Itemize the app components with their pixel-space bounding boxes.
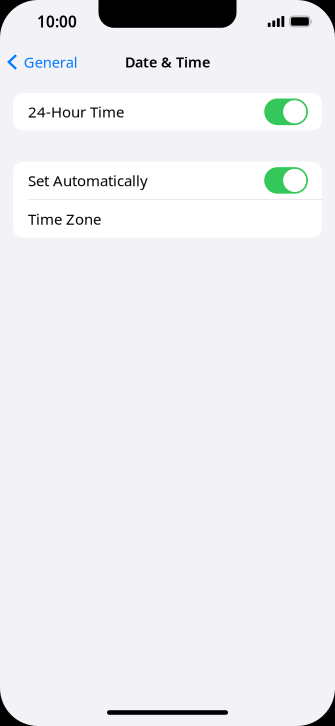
- button[interactable]: Set Automatically: [13, 162, 322, 199]
- staticText: Set Automatically: [28, 170, 148, 190]
- button[interactable]: Time Zone: [13, 200, 322, 238]
- staticText: General: [24, 52, 78, 72]
- button[interactable]: 24-Hour Time: [13, 93, 322, 131]
- staticText: Time Zone: [28, 209, 101, 229]
- staticText: Date & Time: [125, 52, 210, 72]
- staticText: 10:00: [37, 11, 77, 32]
- staticText: 24-Hour Time: [28, 102, 124, 122]
- button[interactable]: General: [0, 46, 84, 78]
